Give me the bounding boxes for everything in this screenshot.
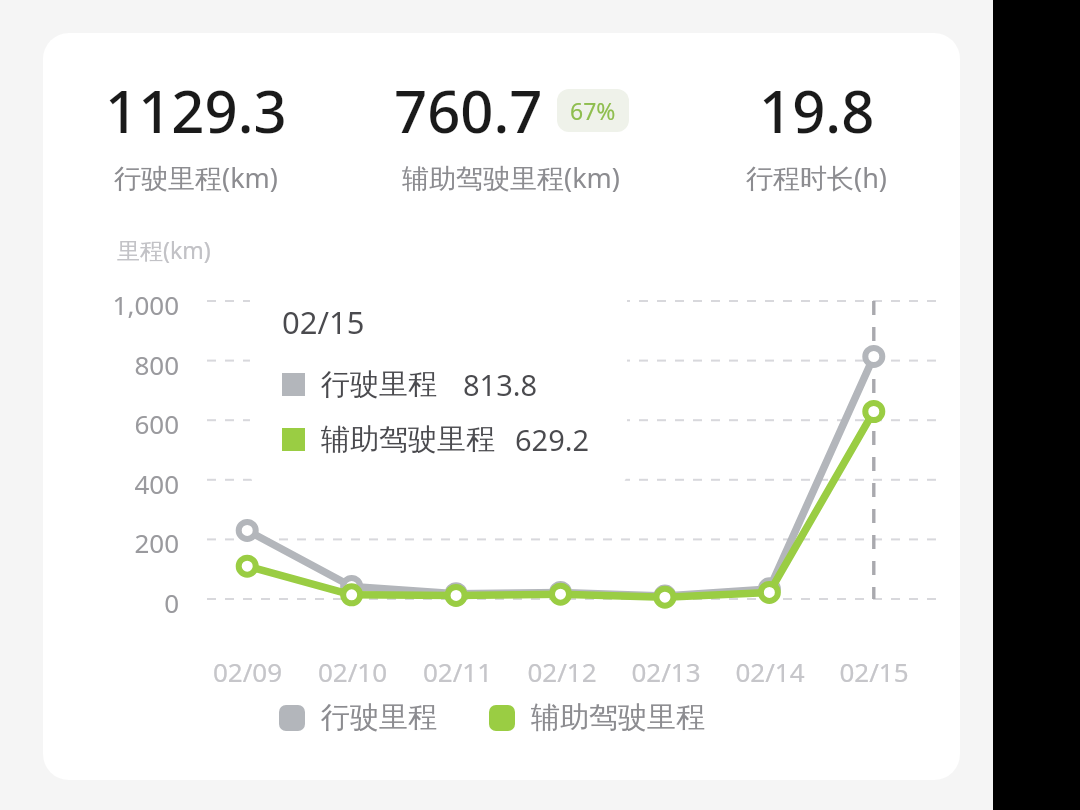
staticText: 760.7 (394, 71, 543, 150)
staticText: 800 (43, 347, 179, 382)
staticText: 02/09 (195, 654, 300, 689)
staticText: 1129.3 (105, 71, 287, 150)
staticText: 02/13 (614, 654, 718, 689)
staticText: 02/14 (718, 654, 822, 689)
button[interactable]: 02/15 (250, 273, 627, 490)
staticText: 02/11 (405, 654, 510, 689)
staticText: 02/12 (510, 654, 614, 689)
staticText: 辅助驾驶里程 (321, 421, 495, 458)
staticText: 辅助驾驶里程 (531, 699, 705, 736)
staticText: 辅助驾驶里程(km) (402, 159, 620, 196)
staticText: 813.8 (463, 365, 538, 404)
staticText: 0 (43, 585, 179, 620)
staticText: 02/15 (822, 654, 926, 689)
staticText: 67% (570, 95, 616, 126)
staticText: 200 (43, 525, 179, 560)
staticText: 19.8 (759, 71, 875, 150)
staticText: 629.2 (515, 420, 590, 459)
staticText: 400 (43, 466, 179, 501)
button[interactable]: 行驶里程 (275, 695, 441, 740)
staticText: 里程(km) (117, 234, 211, 265)
staticText: 行驶里程(km) (114, 159, 278, 196)
staticText: 行程时长(h) (746, 159, 887, 196)
staticText: 600 (43, 406, 179, 441)
button[interactable]: 辅助驾驶里程 (485, 695, 709, 740)
staticText: 02/10 (300, 654, 405, 689)
staticText: 02/15 (282, 301, 365, 343)
staticText: 行驶里程 (321, 699, 437, 736)
staticText: 1,000 (43, 287, 179, 322)
staticText: 行驶里程 (321, 366, 437, 403)
